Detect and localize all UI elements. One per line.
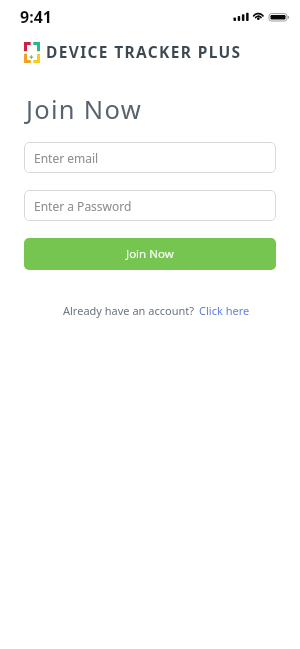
staticText: Click here (199, 303, 250, 318)
staticText: DEVICE TRACKER PLUS (46, 41, 242, 62)
staticText: 9:41 (20, 6, 52, 28)
button[interactable]: Enter email (24, 142, 276, 173)
button[interactable]: Enter a Password (24, 190, 276, 221)
staticText: Join Now (126, 246, 174, 262)
staticText: Enter a Password (34, 198, 132, 214)
button[interactable]: Join Now (24, 238, 276, 270)
staticText: Enter email (34, 150, 99, 166)
staticText: Join Now (26, 92, 143, 127)
staticText: Already have an account? (63, 303, 194, 318)
button[interactable]: Click here (199, 303, 250, 318)
